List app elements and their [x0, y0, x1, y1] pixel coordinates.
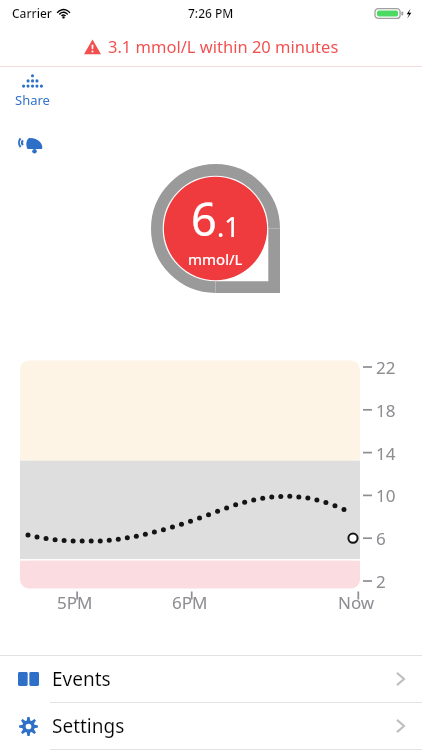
staticText: Carrier [12, 5, 52, 21]
staticText: Events [52, 666, 111, 692]
staticText: 10 [376, 484, 396, 507]
staticText: .1 [217, 208, 240, 245]
staticText: 2 [376, 570, 386, 593]
staticText: 7:26 PM [188, 5, 234, 21]
staticText: 3.1 mmol/L within 20 minutes [108, 35, 339, 57]
button[interactable]: Alerts [11, 124, 49, 162]
button[interactable]: Settings [0, 703, 422, 749]
staticText: 22 [376, 356, 396, 379]
staticText: Now [338, 591, 375, 614]
button[interactable]: Share [9, 72, 55, 109]
staticText: 6PM [172, 591, 208, 614]
staticText: Share [15, 91, 50, 109]
button[interactable]: 6 [149, 162, 282, 295]
button[interactable]: 3.1 mmol/L within 20 minutes [0, 26, 422, 66]
staticText: Settings [52, 713, 125, 739]
staticText: 18 [376, 399, 396, 422]
staticText: 6 [376, 527, 386, 550]
staticText: 5PM [57, 591, 93, 614]
button[interactable]: Events [0, 656, 422, 702]
staticText: 14 [376, 442, 396, 465]
staticText: 6 [191, 188, 217, 249]
staticText: mmol/L [188, 249, 243, 269]
